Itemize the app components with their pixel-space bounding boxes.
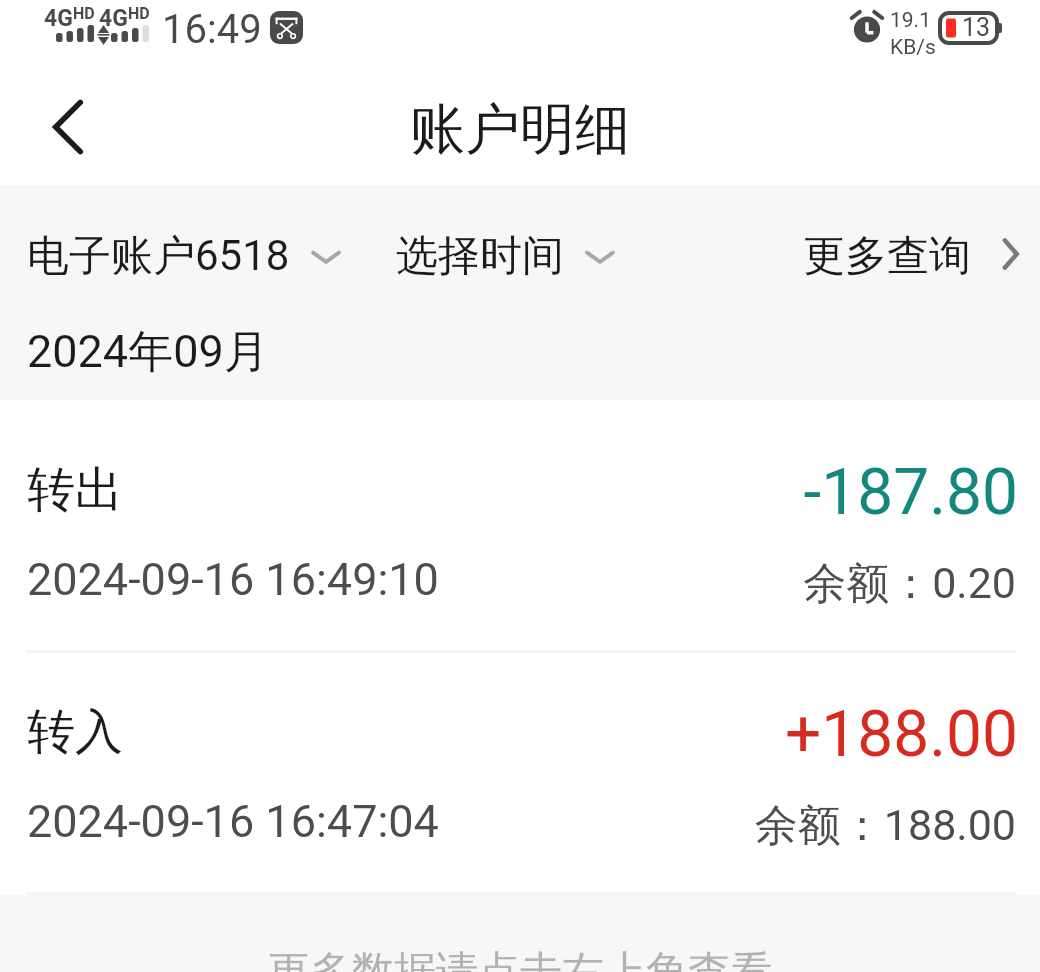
staticText: +188.00 — [0, 697, 1018, 772]
staticText: HD — [73, 4, 95, 23]
staticText: 账户明细 — [410, 95, 630, 164]
staticText: 余额：188.00 — [0, 799, 1016, 853]
button[interactable]: 电子账户6518 — [27, 211, 343, 287]
staticText: KB/s — [890, 35, 936, 60]
button[interactable]: 更多查询 — [803, 211, 1023, 287]
staticText: 余额：0.20 — [0, 557, 1016, 611]
staticText: 更多查询 — [803, 230, 971, 283]
staticText: 电子账户6518 — [27, 230, 290, 283]
staticText: -187.80 — [0, 455, 1018, 530]
staticText: 选择时间 — [396, 230, 564, 283]
staticText: HD — [128, 4, 150, 23]
button[interactable]: 转入 — [0, 642, 1040, 892]
staticText: 13 — [962, 13, 991, 42]
staticText: 4G — [99, 5, 128, 32]
other: Screenshot — [270, 11, 303, 44]
staticText: 转入 — [27, 702, 123, 762]
staticText: 2024-09-16 16:47:04 — [27, 795, 439, 848]
button[interactable]: 选择时间 — [396, 211, 617, 287]
staticText: 2024年09月 — [27, 324, 269, 381]
staticText: 更多数据请点击右上角查看 — [0, 946, 1040, 972]
staticText: 转出 — [27, 460, 123, 520]
staticText: 19.1 — [890, 8, 931, 33]
staticText: 16:49 — [162, 6, 262, 53]
button[interactable]: Back — [20, 79, 116, 175]
staticText: 4G — [44, 5, 73, 32]
button[interactable]: 转出 — [0, 400, 1040, 650]
staticText: 2024-09-16 16:49:10 — [27, 553, 439, 606]
